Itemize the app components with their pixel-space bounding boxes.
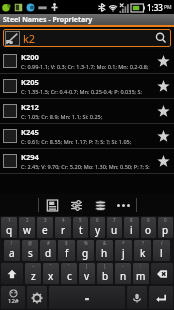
- staticText: b: [102, 269, 109, 283]
- staticText: Fe: [6, 38, 13, 46]
- button[interactable]: Select K200: [3, 54, 17, 68]
- staticText: C: 1.05; Cr: 8.9; Mn: 1.1; Si: 0.25;: [21, 113, 103, 120]
- button[interactable]: ~: [25, 263, 41, 284]
- button[interactable]: Select K245: [0, 124, 174, 149]
- button[interactable]: %: [77, 240, 94, 261]
- staticText: !: [11, 240, 13, 246]
- button[interactable]: Fe: [3, 29, 171, 47]
- button[interactable]: Select K294: [3, 154, 17, 168]
- staticText: k: [140, 246, 146, 260]
- button[interactable]: ): [97, 263, 113, 284]
- button[interactable]: 2: [19, 217, 35, 238]
- staticText: $: [65, 240, 68, 246]
- button[interactable]: 7: [107, 217, 122, 238]
- staticText: s: [28, 246, 33, 260]
- staticText: c: [67, 269, 72, 283]
- staticText: n: [120, 269, 127, 283]
- staticText: q: [6, 223, 13, 237]
- button[interactable]: Select K212: [0, 99, 174, 124]
- button[interactable]: /: [153, 240, 170, 261]
- button[interactable]: 8: [124, 217, 139, 238]
- button[interactable]: Select K294: [0, 149, 174, 174]
- staticText: w: [23, 223, 31, 237]
- staticText: 9: [147, 217, 150, 223]
- staticText: 6: [96, 217, 99, 223]
- staticText: 12#: [8, 297, 19, 305]
- button[interactable]: &: [96, 240, 113, 261]
- staticText: *: [122, 240, 125, 246]
- button[interactable]: Select K245: [3, 129, 17, 143]
- staticText: m: [136, 269, 146, 283]
- staticText: K294: [21, 152, 39, 162]
- staticText: p: [162, 223, 169, 237]
- staticText: u: [111, 223, 118, 237]
- staticText: 4: [62, 217, 65, 223]
- button[interactable]: 1: [1, 217, 17, 238]
- button[interactable]: Voice input: [127, 286, 147, 309]
- button[interactable]: Select K200: [0, 49, 174, 74]
- staticText: C: 2.45; V: 9.70; Cr: 5.20; Mo: 1.30; Mn…: [21, 163, 150, 170]
- staticText: 3: [44, 217, 47, 223]
- staticText: d: [45, 246, 52, 260]
- button[interactable]: Document: [43, 196, 61, 214]
- staticText: j: [122, 246, 125, 260]
- button[interactable]: Space: [49, 286, 125, 309]
- staticText: &: [103, 240, 107, 246]
- button[interactable]: (: [79, 263, 95, 284]
- staticText: C: 1.35-1.5; Cr: 0.4-0.7; Mn: 0.25-0.4; …: [21, 88, 142, 95]
- button[interactable]: Shift: [1, 263, 23, 284]
- button[interactable]: 4: [55, 217, 71, 238]
- staticText: e: [42, 223, 48, 237]
- staticText: k2: [23, 31, 36, 46]
- button[interactable]: ': [61, 263, 77, 284]
- staticText: 7: [113, 217, 116, 223]
- staticText: l: [160, 246, 163, 260]
- button[interactable]: 5: [73, 217, 88, 238]
- button[interactable]: 6: [90, 217, 105, 238]
- button[interactable]: `: [43, 263, 59, 284]
- staticText: #: [47, 240, 50, 246]
- staticText: PM: [164, 4, 172, 11]
- button[interactable]: Database: [91, 196, 109, 214]
- button[interactable]: Favorite K212: [155, 103, 171, 119]
- button[interactable]: Favorite K294: [155, 153, 171, 169]
- button[interactable]: :: [133, 263, 149, 284]
- staticText: `: [50, 263, 52, 269]
- staticText: i: [130, 223, 133, 237]
- button[interactable]: Settings: [27, 286, 47, 309]
- button[interactable]: Favorite K200: [155, 53, 171, 69]
- staticText: 8: [130, 217, 133, 223]
- button[interactable]: Select K205: [0, 74, 174, 99]
- button[interactable]: 0: [158, 217, 173, 238]
- button[interactable]: Select K205: [3, 79, 17, 93]
- button[interactable]: Search: [153, 30, 169, 46]
- button[interactable]: *: [115, 240, 132, 261]
- button[interactable]: #: [40, 240, 56, 261]
- button[interactable]: 9: [141, 217, 156, 238]
- button[interactable]: Favorite K245: [155, 128, 171, 144]
- staticText: C: 0.99-1.1; V: 0.3; Cr: 1.3-1.7; Mo: 0.…: [21, 63, 149, 70]
- staticText: y: [95, 223, 101, 237]
- button[interactable]: 3: [37, 217, 53, 238]
- button[interactable]: Favorite K205: [155, 78, 171, 94]
- button[interactable]: Select K212: [3, 104, 17, 118]
- staticText: ): [104, 263, 106, 269]
- button[interactable]: Backspace: [151, 263, 173, 284]
- button[interactable]: @: [22, 240, 38, 261]
- button[interactable]: -: [115, 263, 131, 284]
- button[interactable]: Enter: [149, 286, 173, 309]
- staticText: a: [9, 246, 15, 260]
- staticText: 1: [8, 217, 11, 223]
- staticText: Steel Names - Proprietary: [3, 15, 93, 25]
- button[interactable]: !: [4, 240, 20, 261]
- staticText: K205: [21, 77, 39, 87]
- staticText: 1:33: [147, 2, 163, 13]
- button[interactable]: $: [58, 240, 75, 261]
- button[interactable]: More options: [114, 196, 132, 214]
- button[interactable]: Symbols: [1, 286, 25, 309]
- button[interactable]: Filters: [67, 196, 85, 214]
- staticText: :: [140, 263, 142, 269]
- staticText: f: [65, 246, 69, 260]
- staticText: v: [84, 269, 90, 283]
- button[interactable]: ?: [134, 240, 151, 261]
